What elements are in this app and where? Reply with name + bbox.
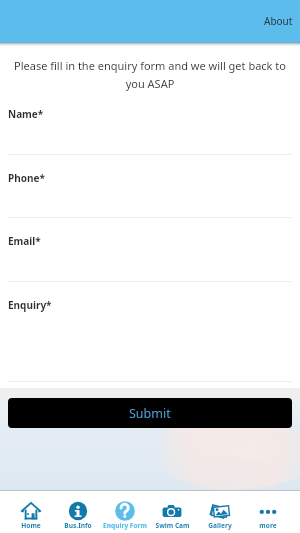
staticText: Please fill in the enquiry form and we w… [13,58,287,91]
button[interactable]: Gallery [196,494,244,530]
staticText: Home [21,521,41,530]
button[interactable]: Enquiry Form [101,494,148,530]
staticText: Submit [129,405,171,422]
button[interactable]: Submit [8,398,292,428]
staticText: Phone* [8,171,45,185]
button[interactable]: Bus.Info [54,494,101,530]
staticText: Enquiry* [8,298,52,312]
staticText: Gallery [208,521,232,530]
staticText: Name* [8,107,44,121]
staticText: Email* [8,234,41,248]
staticText: Enquiry Form [103,521,147,530]
staticText: Bus.Info [64,521,92,530]
button[interactable]: Swim Cam [148,494,196,530]
staticText: Swim Cam [155,521,190,530]
button[interactable]: more [244,494,292,530]
button[interactable]: About [257,6,300,36]
button[interactable]: Home [7,494,54,530]
staticText: more [259,521,277,530]
staticText: About [264,14,293,28]
